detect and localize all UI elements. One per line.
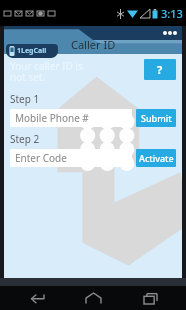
staticText: Your caller ID is not set. [10,59,144,84]
button[interactable]: Home [73,286,113,310]
staticText: Step 2 [10,132,40,146]
button[interactable]: 1LegCall logo [6,44,58,58]
button[interactable]: Recent apps [130,286,170,310]
button[interactable]: Help [144,59,176,80]
button[interactable]: Enter Code [10,149,132,167]
staticText: Step 1 [10,92,40,106]
staticText: Enter Code [15,151,67,165]
staticText: Activate [139,152,174,164]
staticText: Mobile Phone # [15,111,89,125]
button[interactable]: Back [17,286,57,310]
staticText: 3:13 [161,6,183,21]
staticText: 1LegCall [17,46,47,56]
button[interactable]: More options [162,28,178,37]
button[interactable]: Submit [136,109,176,127]
staticText: Submit [141,112,172,124]
staticText: Caller ID [71,37,116,52]
button[interactable]: Mobile Phone # [10,109,132,127]
button[interactable]: Activate [136,149,176,167]
staticText: ? [157,62,163,77]
